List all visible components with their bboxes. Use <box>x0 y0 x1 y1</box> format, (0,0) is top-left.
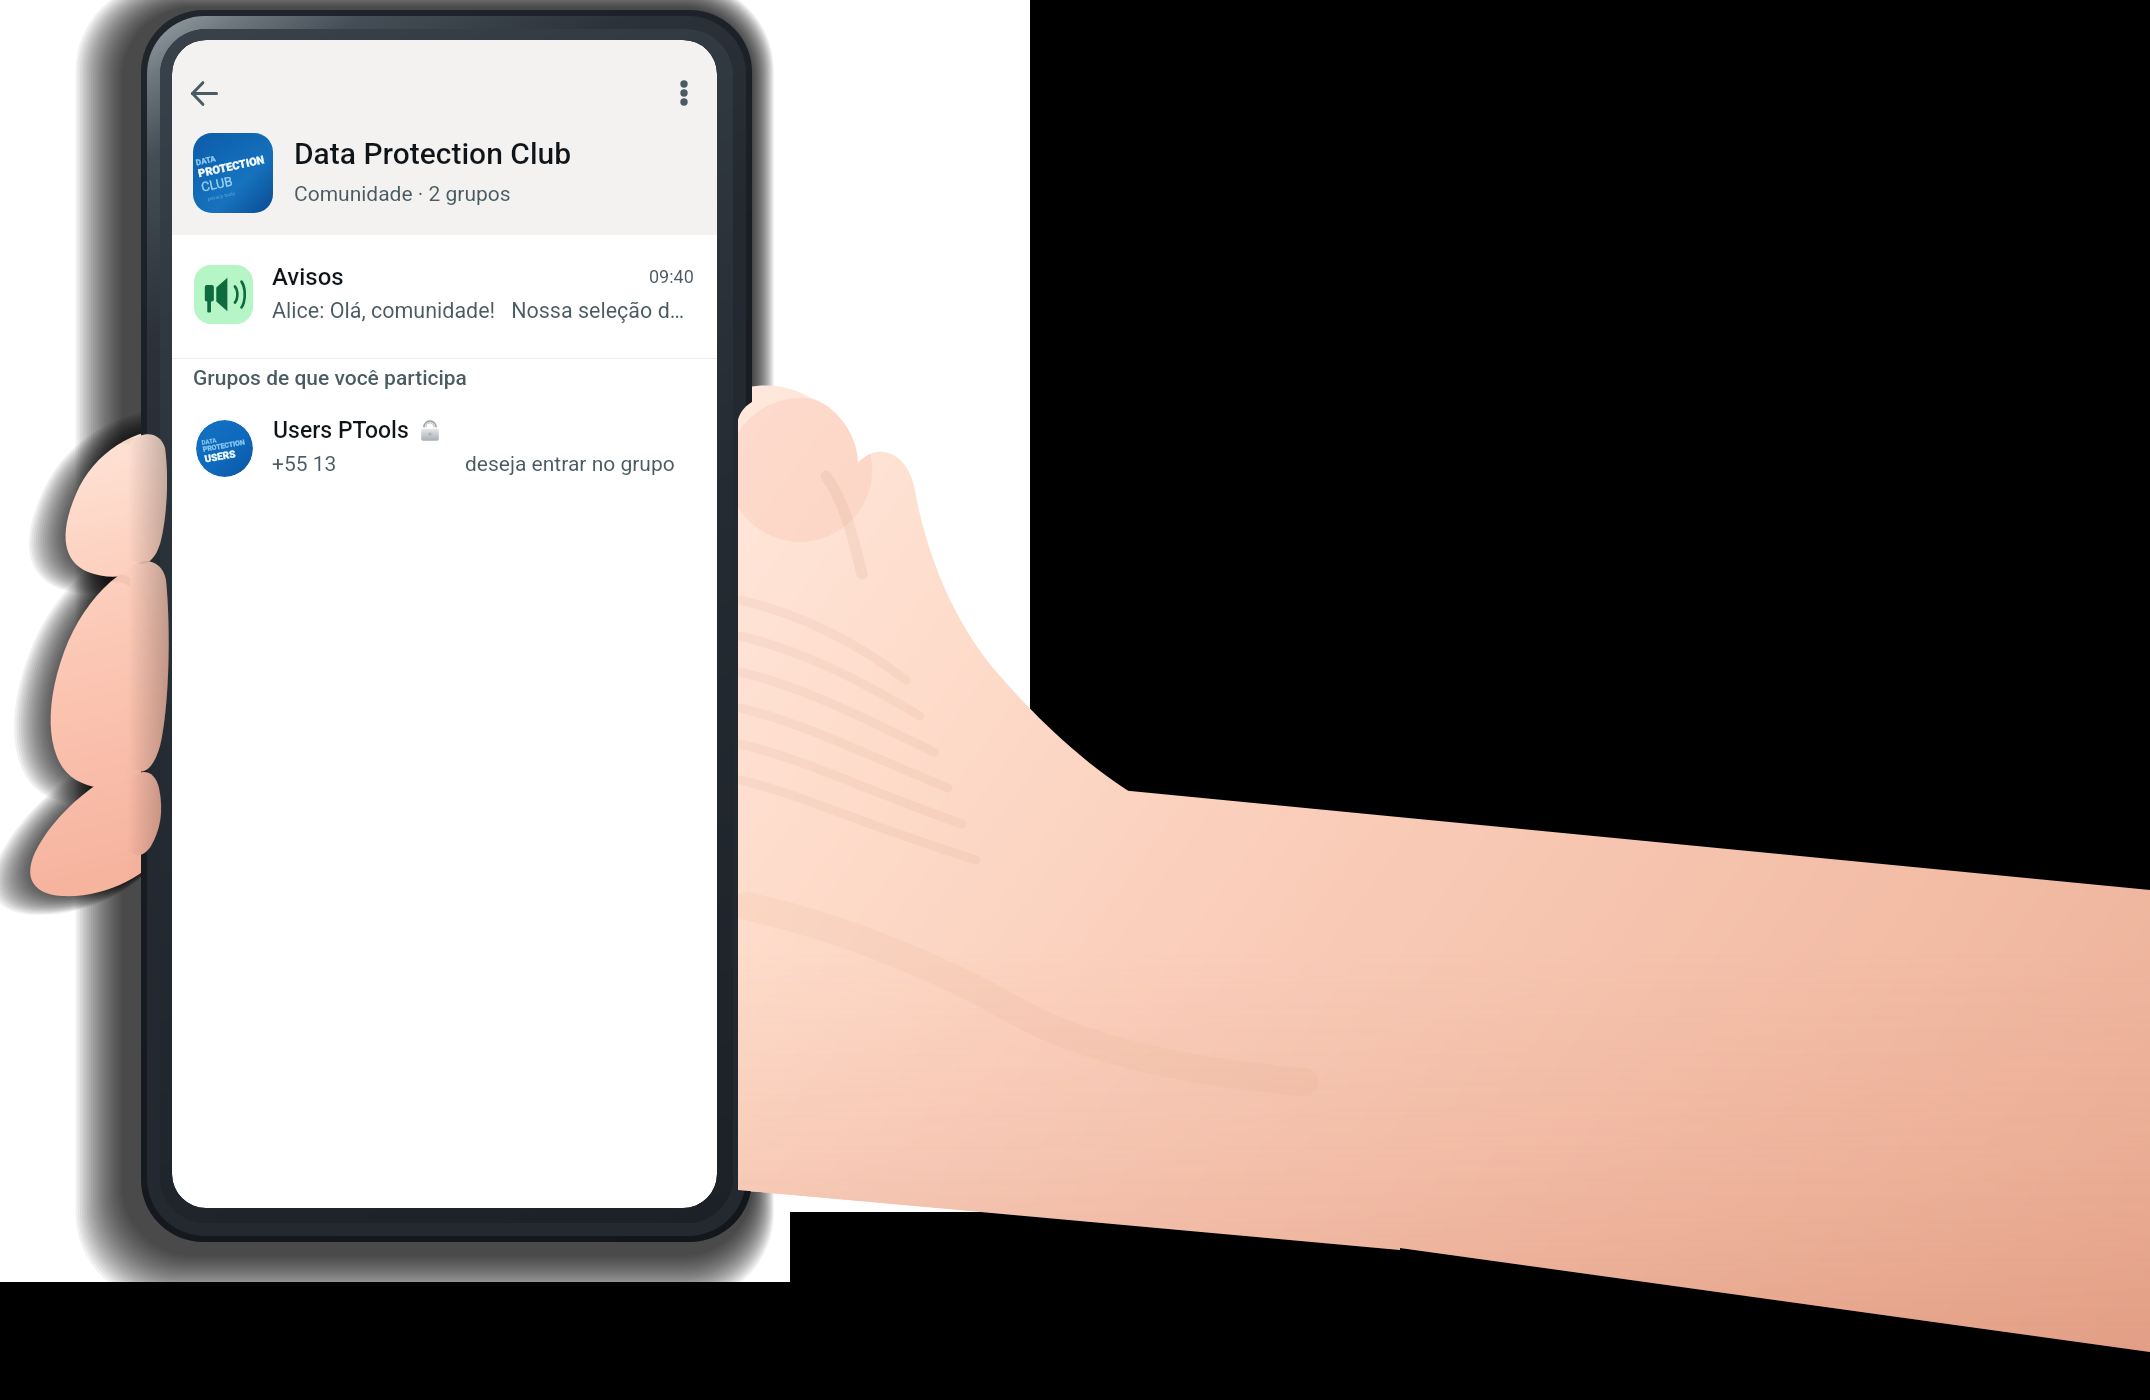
staticText: DATA <box>195 154 217 167</box>
button[interactable]: DATA <box>172 412 717 522</box>
staticText: PROTECTION <box>197 153 266 180</box>
staticText: Comunidade · 2 grupos <box>294 182 511 207</box>
button[interactable]: Avisos <box>172 235 717 358</box>
staticText: CLUB <box>200 173 234 195</box>
staticText: 09:40 <box>649 266 694 287</box>
staticText: Avisos <box>272 263 344 291</box>
button[interactable]: Back <box>180 69 228 117</box>
staticText: Users PTools <box>273 417 409 444</box>
staticText: +55 13 <box>272 452 337 477</box>
staticText: USERS <box>204 448 237 466</box>
button[interactable]: More options <box>660 69 708 117</box>
staticText: privacy tools <box>203 190 236 202</box>
staticText: Data Protection Club <box>294 136 572 171</box>
staticText: Alice: Olá, comunidade! Nossa seleção d… <box>272 298 686 323</box>
staticText: DATA <box>201 436 217 446</box>
staticText: deseja entrar no grupo <box>465 452 675 477</box>
staticText: PROTECTION <box>202 438 246 454</box>
staticText: Grupos de que você participa <box>193 366 467 391</box>
